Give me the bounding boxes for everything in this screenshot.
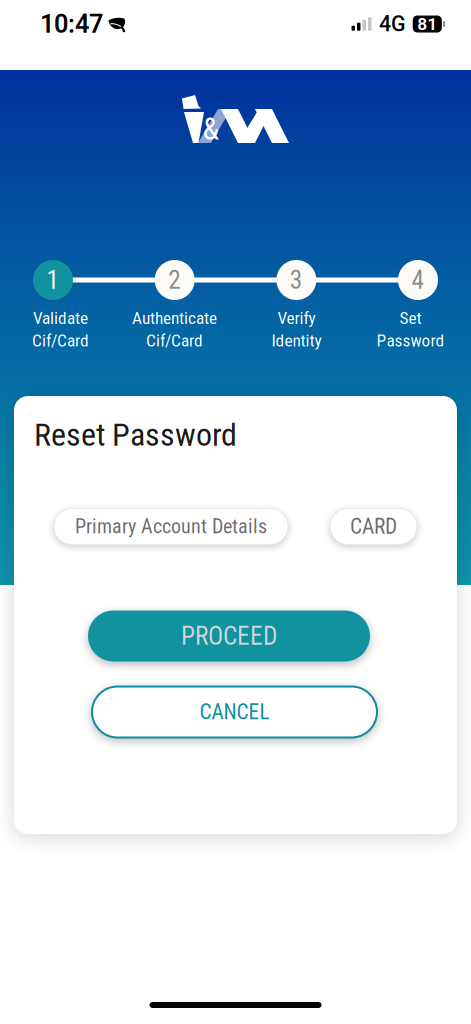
staticText: 1 (46, 265, 59, 295)
staticText: 2 (168, 265, 181, 295)
staticText: 3 (290, 265, 303, 295)
staticText: Validate (33, 308, 88, 328)
staticText: Cif/Card (32, 330, 89, 351)
button[interactable]: CANCEL (92, 686, 377, 737)
staticText: PROCEED (181, 621, 277, 651)
staticText: Identity (271, 330, 321, 351)
staticText: Cif/Card (146, 330, 203, 351)
staticText: CARD (350, 514, 397, 539)
button[interactable]: PROCEED (88, 610, 370, 661)
staticText: 4G (379, 11, 406, 36)
staticText: 10:47 (40, 9, 103, 39)
staticText: 4 (411, 265, 424, 295)
staticText: Primary Account Details (75, 515, 267, 538)
button[interactable]: Primary Account Details (54, 508, 288, 544)
staticText: Password (376, 330, 444, 351)
staticText: 81 (417, 14, 437, 34)
staticText: Authenticate (132, 308, 217, 328)
button[interactable]: CARD (330, 508, 417, 544)
staticText: Reset Password (34, 416, 237, 453)
staticText: CANCEL (199, 699, 269, 724)
staticText: Set (399, 308, 421, 328)
staticText: & (202, 111, 219, 147)
staticText: Verify (277, 308, 315, 328)
